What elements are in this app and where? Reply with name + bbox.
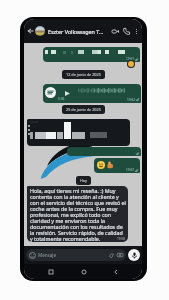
button[interactable]: Call [121,26,132,37]
button[interactable]: Record voice message [128,249,140,261]
button[interactable]: Mensaje [26,249,126,261]
button[interactable]: Reaction [127,60,135,68]
staticText: 12 de junio de 2025 [66,72,101,77]
button[interactable]: Voice message [43,84,141,103]
staticText: 19:58 [117,237,126,241]
button[interactable]: Back [109,265,122,278]
button[interactable]: Photo [27,119,130,146]
button[interactable]: Hola, aquí tienes mi reseña. :) Muy cont… [27,186,128,242]
button[interactable]: Video call [110,26,121,37]
button[interactable] [67,147,141,156]
button[interactable]: Recent apps [44,265,57,278]
button[interactable]: Back [25,26,35,36]
button[interactable]: 19:51 [43,47,140,62]
button[interactable]: Home [77,265,90,278]
staticText: 25 de junio de 2025 [66,107,101,112]
button[interactable]: More options [132,27,141,36]
staticText: 19:52 [127,98,136,102]
button[interactable]: 19:57 [94,158,140,173]
staticText: 19:51 [126,57,135,61]
staticText: 19:57 [126,168,135,172]
staticText: Hoy [80,178,87,183]
staticText: Mensaje [38,252,57,258]
staticText: 0:36 [58,97,65,101]
staticText: Hola, aquí tienes mi reseña. :) Muy cont… [30,187,126,242]
staticText: Eszter Volkswagen T… [48,28,104,35]
